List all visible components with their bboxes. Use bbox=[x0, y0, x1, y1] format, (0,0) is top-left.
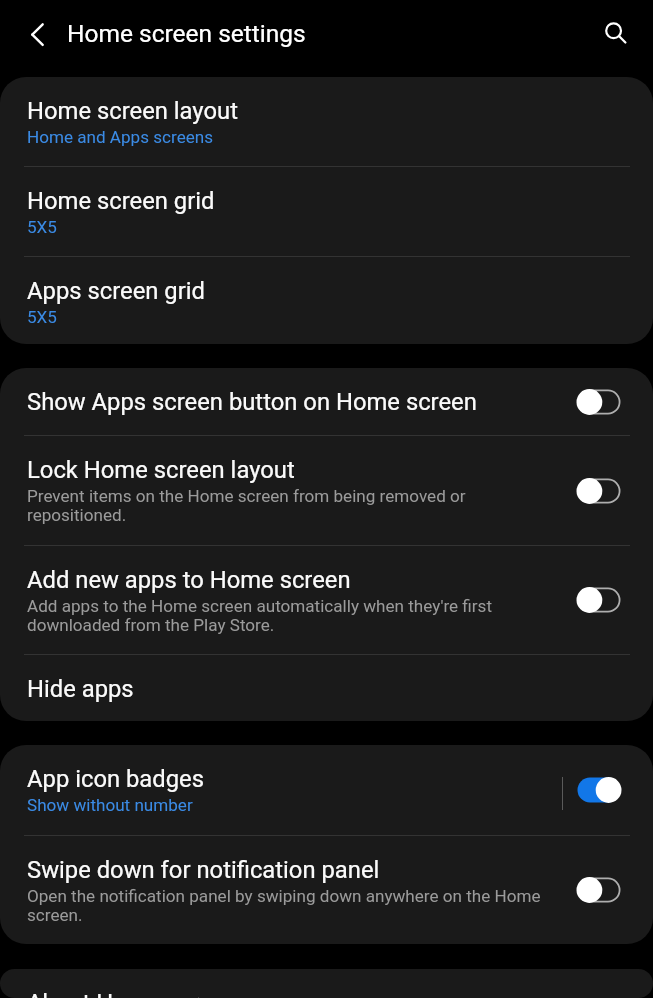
button[interactable]: Toggle on bbox=[576, 776, 622, 804]
button[interactable]: Lock Home screen layout bbox=[0, 436, 653, 545]
staticText: Swipe down for notification panel bbox=[27, 856, 380, 884]
button[interactable]: Search bbox=[592, 9, 636, 53]
button[interactable]: Home screen layout bbox=[0, 77, 653, 166]
staticText: Hide apps bbox=[27, 675, 134, 703]
button[interactable]: Show Apps screen button on Home screen bbox=[0, 368, 653, 435]
staticText: Apps screen grid bbox=[27, 277, 205, 305]
staticText: Home and Apps screens bbox=[27, 127, 214, 147]
button[interactable]: Toggle off bbox=[576, 586, 622, 614]
button[interactable]: Apps screen grid bbox=[0, 257, 653, 344]
staticText: 5X5 bbox=[27, 217, 57, 237]
staticText: Lock Home screen layout bbox=[27, 456, 295, 484]
button[interactable]: App icon badges bbox=[0, 745, 653, 835]
staticText: Prevent items on the Home screen from be… bbox=[27, 486, 550, 525]
staticText: Show without number bbox=[27, 795, 193, 815]
staticText: Open the notification panel by swiping d… bbox=[27, 886, 550, 925]
button[interactable]: Back bbox=[15, 17, 51, 53]
button[interactable]: Hide apps bbox=[0, 655, 653, 721]
button[interactable]: Home screen grid bbox=[0, 167, 653, 256]
staticText: 5X5 bbox=[27, 307, 57, 327]
button[interactable]: Add new apps to Home screen bbox=[0, 546, 653, 654]
staticText: App icon badges bbox=[27, 765, 205, 793]
button[interactable]: Swipe down for notification panel bbox=[0, 836, 653, 944]
staticText: Add new apps to Home screen bbox=[27, 566, 351, 594]
button[interactable]: Toggle off bbox=[576, 876, 622, 904]
staticText: Home screen settings bbox=[67, 19, 306, 48]
staticText: About Home screen bbox=[27, 989, 238, 998]
staticText: Home screen grid bbox=[27, 187, 215, 215]
staticText: Home screen layout bbox=[27, 97, 238, 125]
staticText: Show Apps screen button on Home screen bbox=[27, 388, 477, 416]
button[interactable]: Toggle off bbox=[576, 388, 622, 416]
button[interactable]: Toggle off bbox=[576, 477, 622, 505]
button[interactable]: About Home screen bbox=[0, 969, 653, 998]
staticText: Add apps to the Home screen automaticall… bbox=[27, 596, 550, 635]
